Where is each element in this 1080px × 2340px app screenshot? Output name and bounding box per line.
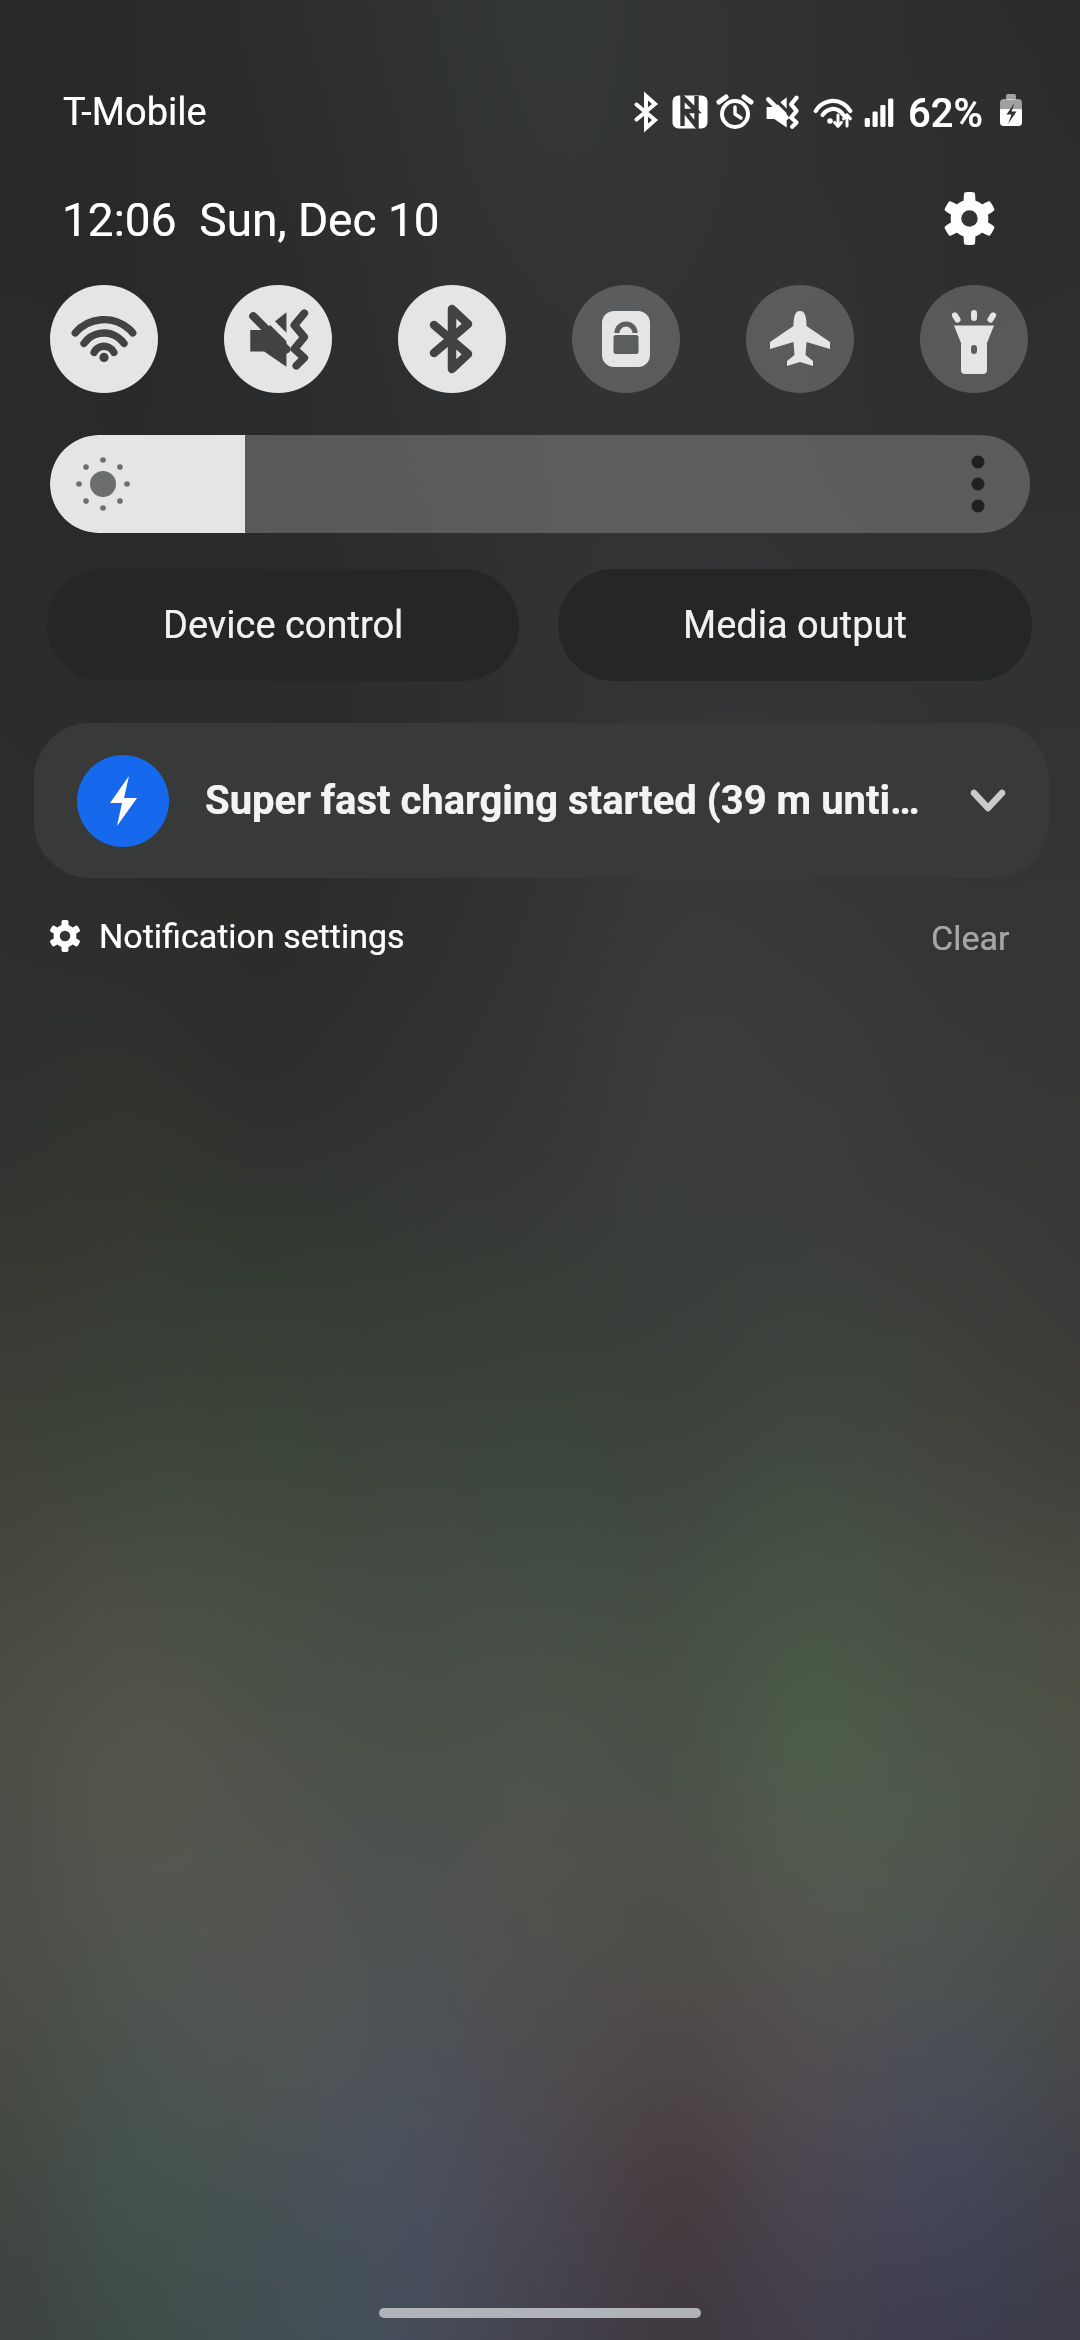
staticText: 62% <box>908 90 983 137</box>
staticText: Media output <box>683 603 907 648</box>
staticText: Super fast charging started (39 m unti… <box>205 777 920 824</box>
staticText: T-Mobile <box>63 90 207 135</box>
button[interactable]: Airplane mode <box>746 285 854 393</box>
button[interactable] <box>34 723 1049 878</box>
button[interactable]: Media output <box>558 569 1032 681</box>
button[interactable]: Brightness <box>50 435 1030 533</box>
button[interactable]: Bluetooth <box>398 285 506 393</box>
button[interactable]: Flashlight <box>920 285 1028 393</box>
staticText: 12:06 Sun, Dec 10 <box>62 193 440 247</box>
staticText: Device control <box>163 603 404 648</box>
button[interactable]: Clear <box>906 900 1034 976</box>
staticText: Clear <box>931 918 1010 958</box>
button[interactable]: Settings <box>929 178 1009 258</box>
button[interactable]: Device control <box>47 569 519 681</box>
staticText: Notification settings <box>99 916 405 956</box>
button[interactable]: Wi-Fi <box>50 285 158 393</box>
button[interactable]: Auto rotate lock <box>572 285 680 393</box>
button[interactable]: Sound mode <box>224 285 332 393</box>
button[interactable]: Notification settings <box>49 903 405 969</box>
